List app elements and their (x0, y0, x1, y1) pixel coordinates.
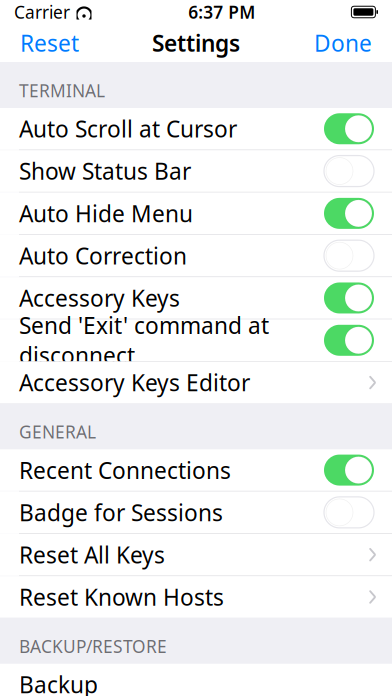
staticText: Badge for Sessions (19, 497, 223, 527)
staticText: Reset All Keys (19, 540, 165, 570)
button[interactable]: Reset Known Hosts (0, 576, 392, 618)
staticText: Recent Connections (19, 455, 231, 485)
button[interactable]: Reset (4, 20, 95, 66)
button[interactable]: Accessory Keys (0, 277, 392, 319)
button[interactable]: Done (298, 20, 388, 66)
staticText: Send 'Exit' command at disconnect (19, 310, 269, 370)
button[interactable]: Badge for Sessions (0, 492, 392, 533)
button[interactable]: Recent Connections (0, 449, 392, 491)
staticText: Reset Known Hosts (19, 582, 224, 612)
staticText: 6:37 PM (188, 0, 255, 23)
staticText: Show Status Bar (19, 156, 191, 186)
staticText: Settings (152, 28, 240, 58)
staticText: Carrier (14, 0, 70, 23)
button[interactable]: Accessory Keys Editor (0, 362, 392, 403)
staticText: Reset (20, 28, 79, 58)
button[interactable]: Auto Correction (0, 235, 392, 276)
button[interactable]: Show Status Bar (0, 150, 392, 192)
staticText: Backup (19, 669, 98, 696)
button[interactable]: Auto Hide Menu (0, 193, 392, 234)
staticText: GENERAL (19, 420, 96, 443)
button[interactable]: Reset All Keys (0, 534, 392, 575)
staticText: Accessory Keys (19, 283, 180, 313)
button[interactable]: Backup (0, 664, 392, 696)
staticText: Accessory Keys Editor (19, 367, 250, 398)
staticText: BACKUP/RESTORE (19, 635, 167, 658)
button[interactable]: Auto Scroll at Cursor (0, 108, 392, 149)
staticText: TERMINAL (19, 79, 105, 102)
button[interactable]: Send 'Exit' command at disconnect (0, 319, 392, 361)
staticText: Auto Hide Menu (19, 198, 193, 228)
staticText: Auto Scroll at Cursor (19, 114, 237, 144)
staticText: Auto Correction (19, 241, 187, 271)
staticText: Done (314, 28, 372, 58)
